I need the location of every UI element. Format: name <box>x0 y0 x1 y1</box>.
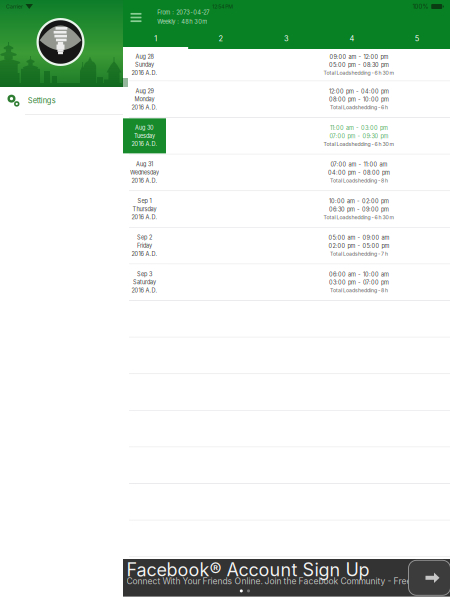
staticText: 11:00 am - 03:00 pm <box>330 125 388 131</box>
button[interactable]: Sep 2 <box>123 228 450 264</box>
button[interactable]: 1 <box>123 30 188 49</box>
staticText: 05:00 am - 09:00 am <box>328 234 389 241</box>
staticText: Wednesday <box>130 169 159 176</box>
staticText: 02:00 pm - 05:00 pm <box>328 243 389 249</box>
staticText: 3 <box>284 34 289 43</box>
button[interactable]: 2 <box>188 30 254 49</box>
staticText: Sep 3 <box>137 271 152 277</box>
staticText: 03:00 pm - 07:00 pm <box>329 279 389 286</box>
staticText: Facebook® Account Sign Up <box>126 559 369 581</box>
staticText: 2016 A.D. <box>131 287 157 294</box>
staticText: Tuesday <box>134 132 155 139</box>
staticText: 05:00 pm - 08:30 pm <box>329 62 389 68</box>
staticText: 12:54 PM <box>212 3 233 10</box>
staticText: 08:00 pm - 10:00 pm <box>329 96 389 103</box>
staticText: Sep 2 <box>137 234 152 241</box>
staticText: 04:00 pm - 08:00 pm <box>328 169 390 176</box>
staticText: Aug 28 <box>135 53 153 60</box>
staticText: 2016 A.D. <box>131 141 157 147</box>
staticText: 2016 A.D. <box>131 250 157 257</box>
staticText: Carrier <box>6 3 23 10</box>
staticText: Settings <box>28 96 56 105</box>
staticText: Total Loadshedding - 8 h <box>330 287 388 294</box>
staticText: Total Loadshedding - 7 h <box>330 251 388 257</box>
button[interactable]: 3 <box>254 30 319 49</box>
button[interactable]: Menu <box>130 8 152 26</box>
staticText: 100% <box>412 3 428 10</box>
staticText: Connect With Your Friends Online. Join t… <box>126 576 413 586</box>
staticText: 07:00 am - 11:00 am <box>330 161 387 168</box>
staticText: Aug 31 <box>136 161 153 168</box>
staticText: Total Loadshedding - 6 h 30 m <box>323 141 394 147</box>
staticText: Aug 29 <box>135 88 153 94</box>
button[interactable]: Aug 29 <box>123 81 450 118</box>
button[interactable]: Facebook® Account Sign Up <box>123 559 450 597</box>
staticText: Aug 30 <box>135 124 154 131</box>
staticText: 2016 A.D. <box>131 70 157 76</box>
staticText: 1 <box>154 34 157 43</box>
button[interactable]: 4 <box>319 30 385 49</box>
staticText: 09:00 am - 12:00 pm <box>329 53 388 60</box>
staticText: 2016 A.D. <box>131 177 157 184</box>
staticText: 06:00 am - 10:00 am <box>329 271 389 278</box>
staticText: 2 <box>219 34 224 43</box>
button[interactable]: 5 <box>385 30 450 49</box>
staticText: 5 <box>415 34 420 43</box>
staticText: 2016 A.D. <box>131 214 157 221</box>
staticText: Monday <box>134 96 154 103</box>
staticText: 10:00 am - 02:00 pm <box>329 198 389 205</box>
button[interactable]: Sep 3 <box>123 264 450 301</box>
staticText: From : 2073-04-27 <box>157 9 209 16</box>
staticText: Sunday <box>135 61 154 68</box>
staticText: 12:00 pm - 04:00 pm <box>329 88 389 95</box>
staticText: Saturday <box>133 279 156 286</box>
button[interactable]: Sep 1 <box>123 191 450 228</box>
staticText: Weekly : 48h 30m <box>157 18 207 25</box>
button[interactable]: Aug 30 <box>123 118 450 155</box>
button[interactable]: Aug 31 <box>123 155 450 191</box>
staticText: Thursday <box>132 206 156 212</box>
staticText: 06:30 pm - 09:00 pm <box>329 206 389 213</box>
button[interactable]: Settings <box>0 87 123 115</box>
staticText: Total Loadshedding - 6 h 30 m <box>323 70 394 76</box>
staticText: Total Loadshedding - 8 h <box>330 177 388 184</box>
staticText: 2016 A.D. <box>131 104 157 111</box>
button[interactable]: Aug 28 <box>123 49 450 81</box>
staticText: Friday <box>137 242 152 249</box>
staticText: Total Loadshedding - 6 h <box>330 104 388 111</box>
staticText: 4 <box>349 34 354 43</box>
staticText: Total Loadshedding - 6 h 30 m <box>323 214 394 220</box>
staticText: 07:00 pm - 09:30 pm <box>329 133 388 140</box>
staticText: Sep 1 <box>137 197 151 204</box>
